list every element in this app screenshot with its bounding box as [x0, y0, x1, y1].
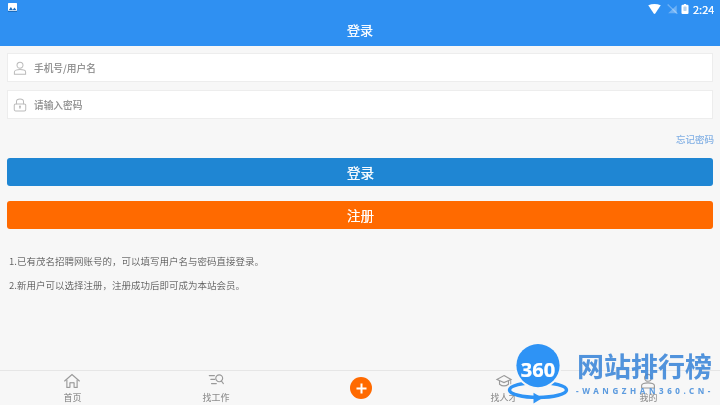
- staticText: 找人才: [490, 391, 518, 404]
- button[interactable]: 找工作: [144, 371, 288, 405]
- button[interactable]: 我的: [576, 371, 720, 405]
- button[interactable]: 忘记密码: [670, 128, 720, 150]
- button[interactable]: 找人才: [432, 371, 576, 405]
- staticText: 注册: [347, 205, 374, 225]
- button[interactable]: 请输入密码: [7, 90, 713, 119]
- button[interactable]: 登录: [7, 158, 713, 186]
- staticText: 登录: [347, 162, 374, 182]
- button[interactable]: 首页: [0, 371, 144, 405]
- staticText: 忘记密码: [676, 132, 715, 146]
- staticText: 首页: [63, 391, 82, 404]
- staticText: 登录: [347, 20, 374, 39]
- staticText: 我的: [639, 391, 658, 404]
- staticText: 手机号/用户名: [34, 61, 96, 75]
- button[interactable]: 注册: [7, 201, 713, 229]
- staticText: 网站排行榜: [577, 346, 712, 385]
- staticText: 找工作: [202, 391, 230, 404]
- staticText: -WANGZHAN360.CN-: [576, 385, 714, 396]
- button[interactable]: Add: [350, 377, 372, 399]
- staticText: 2.新用户可以选择注册，注册成功后即可成为本站会员。: [9, 278, 245, 292]
- staticText: 请输入密码: [34, 98, 83, 112]
- staticText: 1.已有茂名招聘网账号的，可以填写用户名与密码直接登录。: [9, 254, 264, 268]
- staticText: 360: [500, 356, 576, 383]
- staticText: 2:24: [693, 1, 715, 17]
- button[interactable]: 手机号/用户名: [7, 53, 713, 82]
